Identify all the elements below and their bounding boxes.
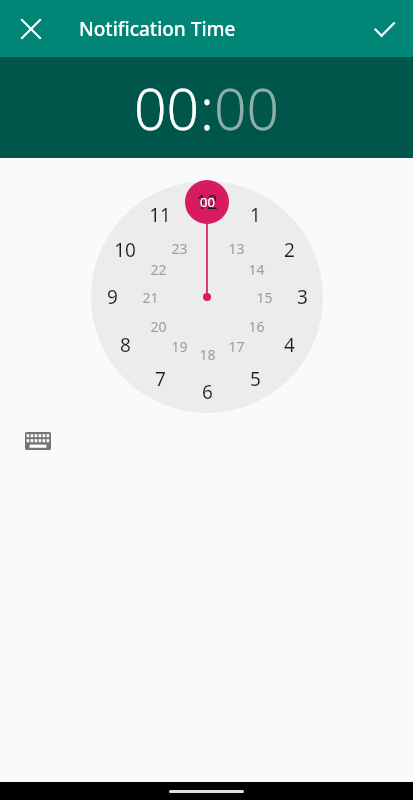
staticText: 10 [114,237,136,263]
staticText: Notification Time [79,16,236,42]
staticText: 15 [256,288,273,307]
staticText: 5 [250,366,261,392]
button[interactable]: Clock face [91,181,323,413]
button[interactable]: Close [11,9,51,49]
staticText: 19 [171,337,188,356]
staticText: 11 [149,202,171,228]
staticText: 18 [199,345,216,364]
button[interactable]: Switch to text input [20,427,56,455]
staticText: 23 [171,239,188,258]
staticText: 00 [200,193,215,211]
staticText: 12 [196,189,218,215]
button[interactable]: Confirm [362,7,406,51]
staticText: 16 [248,317,265,336]
staticText: 9 [107,284,118,310]
staticText: 21 [142,288,159,307]
button[interactable]: 00 [134,69,200,147]
staticText: 8 [120,332,131,358]
staticText: 2 [284,237,295,263]
staticText: 13 [228,239,245,258]
staticText: 17 [228,337,245,356]
staticText: 14 [248,260,265,279]
staticText: 20 [150,317,167,336]
staticText: 3 [297,284,308,310]
button[interactable]: 00 [214,69,280,147]
staticText: 6 [202,379,213,405]
staticText: 4 [284,332,295,358]
staticText: 7 [155,366,166,392]
staticText: 22 [150,260,167,279]
staticText: 1 [250,202,261,228]
staticText: : [200,69,214,147]
